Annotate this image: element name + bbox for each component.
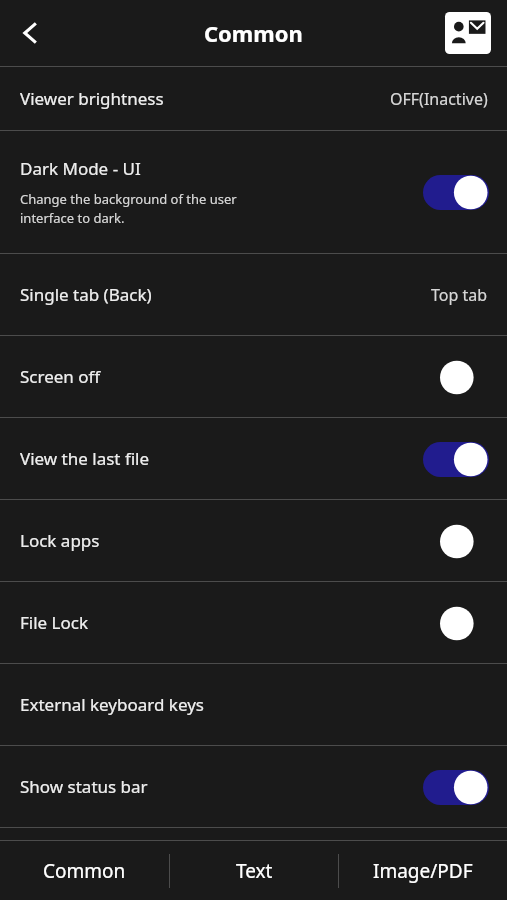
button[interactable]: Lock apps bbox=[0, 500, 507, 581]
button[interactable]: Single tab (Back) bbox=[0, 254, 507, 335]
staticText: Screen off bbox=[20, 365, 101, 388]
button[interactable]: File Lock bbox=[0, 582, 507, 663]
staticText: Common bbox=[204, 18, 303, 48]
staticText: External keyboard keys bbox=[20, 693, 205, 716]
staticText: OFF(Inactive) bbox=[390, 88, 488, 110]
button[interactable]: Show status bar bbox=[0, 746, 507, 827]
button[interactable]: Dark Mode - UI bbox=[0, 131, 507, 253]
button[interactable]: Text bbox=[170, 841, 338, 900]
button[interactable]: Screen off bbox=[0, 336, 507, 417]
button[interactable]: Back bbox=[0, 3, 60, 63]
button[interactable]: Common bbox=[0, 841, 169, 900]
staticText: Viewer brightness bbox=[20, 87, 164, 110]
staticText: File Lock bbox=[20, 611, 89, 634]
staticText: Single tab (Back) bbox=[20, 283, 152, 306]
staticText: Common bbox=[43, 858, 126, 884]
button[interactable]: Lock apps bbox=[419, 516, 493, 566]
staticText: Show status bar bbox=[20, 775, 148, 798]
button[interactable]: Contact card bbox=[445, 12, 491, 54]
staticText: Top tab bbox=[431, 284, 488, 306]
staticText: Lock apps bbox=[20, 529, 100, 552]
staticText: Change the background of the user interf… bbox=[20, 190, 237, 227]
staticText: Dark Mode - UI bbox=[20, 157, 141, 180]
button[interactable]: Screen off bbox=[419, 352, 493, 402]
staticText: Text bbox=[236, 858, 273, 884]
staticText: Image/PDF bbox=[373, 858, 473, 884]
button[interactable]: Image/PDF bbox=[339, 841, 507, 900]
button[interactable]: View the last file bbox=[419, 434, 493, 484]
button[interactable]: Show status bar bbox=[419, 762, 493, 812]
button[interactable]: Dark Mode - UI bbox=[419, 167, 493, 217]
button[interactable]: File Lock bbox=[419, 598, 493, 648]
button[interactable]: Viewer brightness bbox=[0, 67, 507, 130]
button[interactable]: View the last file bbox=[0, 418, 507, 499]
button[interactable]: External keyboard keys bbox=[0, 664, 507, 745]
staticText: View the last file bbox=[20, 447, 150, 470]
